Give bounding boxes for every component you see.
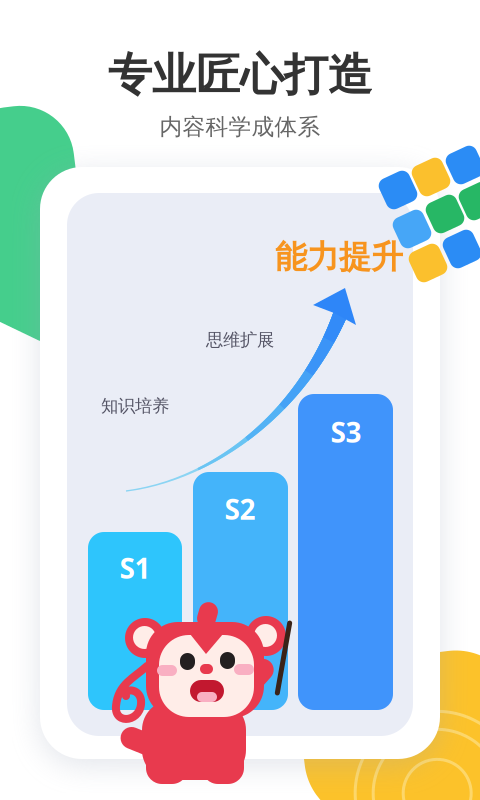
staticText: 能力提升 (275, 237, 403, 277)
staticText: S1 (119, 549, 150, 587)
staticText: 内容科学成体系 (159, 113, 320, 141)
staticText: S2 (224, 490, 255, 528)
staticText: S3 (330, 413, 361, 451)
staticText: 专业匠心打造 (108, 48, 372, 102)
staticText: 思维扩展 (206, 329, 274, 351)
staticText: 知识培养 (101, 395, 169, 417)
